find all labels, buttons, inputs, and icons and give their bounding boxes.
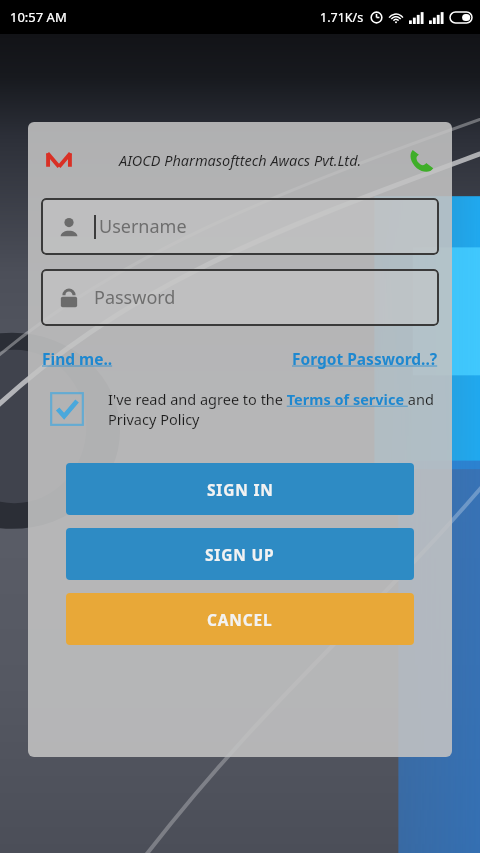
staticText: I've read and agree to the Terms of serv… — [108, 389, 438, 429]
staticText: SIGN UP — [205, 544, 275, 565]
staticText: AIOCD Pharmasofttech Awacs Pvt.Ltd. — [119, 150, 362, 170]
staticText: Password — [94, 285, 176, 310]
button[interactable]: SIGN IN — [66, 463, 414, 515]
staticText: CANCEL — [207, 609, 273, 630]
button[interactable]: Agree to terms — [48, 390, 86, 428]
button[interactable]: Username — [41, 198, 439, 255]
button[interactable]: Forgot Password..? — [292, 348, 438, 369]
staticText: Forgot Password..? — [292, 348, 438, 369]
button[interactable]: Email — [40, 141, 78, 179]
button[interactable]: Call — [402, 141, 440, 179]
staticText: 10:57 AM — [10, 8, 67, 26]
button[interactable]: Password — [41, 269, 439, 326]
button[interactable]: Find me.. — [42, 348, 113, 369]
staticText: SIGN IN — [207, 479, 274, 500]
staticText: Find me.. — [42, 348, 113, 369]
staticText: 1.71K/s — [320, 9, 364, 26]
staticText: Username — [99, 214, 187, 239]
button[interactable]: SIGN UP — [66, 528, 414, 580]
button[interactable]: CANCEL — [66, 593, 414, 645]
